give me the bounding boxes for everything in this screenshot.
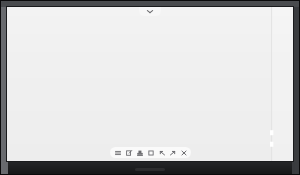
button[interactable]: Open menu [139,7,161,16]
button[interactable]: Redo [168,148,177,157]
button[interactable]: Menu [113,148,122,157]
button[interactable]: Close [179,148,188,157]
button[interactable]: New note [124,148,133,157]
button[interactable]: Shape [146,148,155,157]
button[interactable]: Pen [135,148,144,157]
button[interactable]: Undo [157,148,166,157]
